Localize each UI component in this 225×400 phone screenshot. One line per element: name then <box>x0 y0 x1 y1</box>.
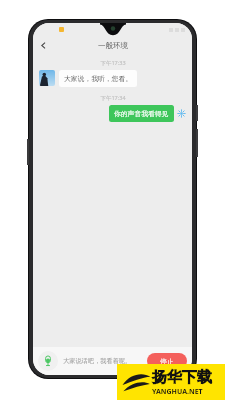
button[interactable]: Back <box>35 37 51 53</box>
staticText: 你的声音我看得见 <box>114 109 169 118</box>
staticText: 大家说话吧，我看着呢。 <box>63 357 147 365</box>
staticText: 停止 <box>160 357 174 366</box>
staticText: 下午17:34 <box>100 94 126 102</box>
button[interactable]: 大家说，我听，您看。 <box>59 70 137 87</box>
button[interactable]: 你的声音我看得见 <box>109 105 174 122</box>
button[interactable]: Microphone <box>38 351 58 371</box>
button[interactable]: 停止 <box>147 353 187 369</box>
staticText: 下午17:33 <box>100 59 126 67</box>
staticText: 一般环境 <box>98 41 128 50</box>
button[interactable]: Sending <box>177 109 186 118</box>
staticText: YANGHUA.NET <box>152 387 203 397</box>
staticText: 大家说，我听，您看。 <box>64 74 132 83</box>
button[interactable]: Avatar <box>39 70 55 86</box>
staticText: 扬华下载 <box>152 368 212 387</box>
